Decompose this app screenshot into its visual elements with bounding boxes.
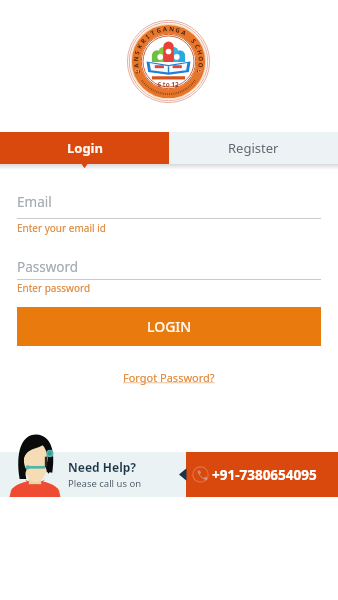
staticText: Need Help? <box>68 459 137 475</box>
button[interactable]: Call +91-7380654095 <box>186 452 338 497</box>
staticText: Please call us on <box>68 477 142 490</box>
button[interactable]: Login <box>0 132 169 164</box>
button[interactable]: Forgot Password? <box>123 370 215 385</box>
staticText: Email <box>17 193 52 211</box>
staticText: Login <box>67 139 103 157</box>
button[interactable]: LOGIN <box>17 307 321 346</box>
button[interactable]: Register <box>169 132 338 164</box>
staticText: Enter your email id <box>17 221 106 235</box>
staticText: Register <box>228 139 279 157</box>
staticText: LOGIN <box>147 317 192 336</box>
staticText: +91-7380654095 <box>212 466 317 484</box>
staticText: Enter password <box>17 281 91 295</box>
staticText: Password <box>17 258 79 276</box>
